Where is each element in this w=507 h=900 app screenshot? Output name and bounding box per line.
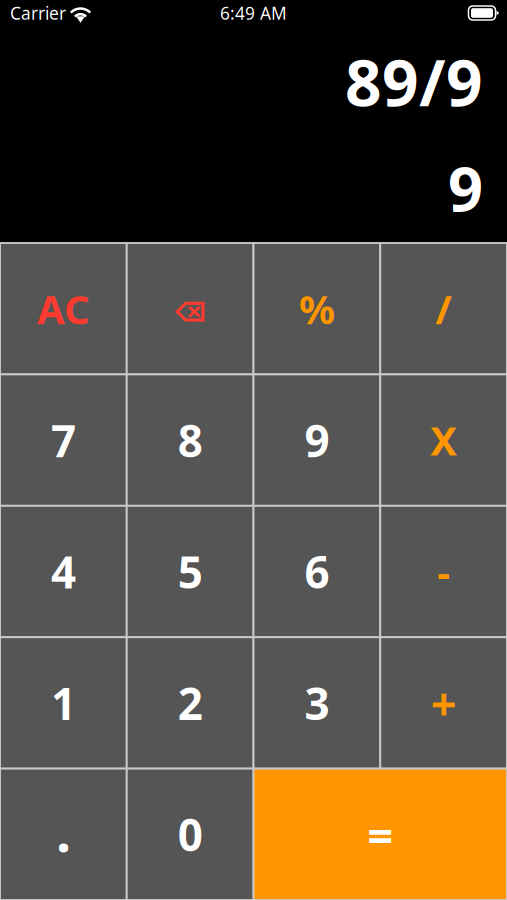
button[interactable]: 0 bbox=[127, 769, 254, 900]
button[interactable]: Multiply bbox=[380, 374, 507, 506]
staticText: 89/9 bbox=[345, 39, 483, 124]
staticText: 0 bbox=[178, 805, 203, 863]
button[interactable]: 4 bbox=[0, 506, 127, 637]
staticText: 6 bbox=[304, 542, 329, 601]
button[interactable]: Decimal point bbox=[0, 769, 127, 900]
button[interactable]: 8 bbox=[127, 374, 254, 506]
staticText: 9 bbox=[304, 411, 329, 469]
staticText: 9 bbox=[448, 147, 483, 228]
button[interactable]: Divide bbox=[380, 243, 507, 374]
button[interactable]: 6 bbox=[253, 506, 380, 637]
button[interactable]: 1 bbox=[0, 637, 127, 769]
button[interactable]: All clear bbox=[0, 243, 127, 374]
button[interactable]: 5 bbox=[127, 506, 254, 637]
staticText: 4 bbox=[51, 542, 76, 601]
staticText: = bbox=[367, 804, 393, 864]
button[interactable]: 7 bbox=[0, 374, 127, 506]
staticText: AC bbox=[37, 282, 90, 335]
button[interactable]: Add bbox=[380, 637, 507, 769]
button[interactable]: Subtract bbox=[380, 506, 507, 637]
button[interactable]: Equals bbox=[253, 769, 507, 900]
button[interactable]: 9 bbox=[253, 374, 380, 506]
staticText: . bbox=[56, 796, 71, 867]
staticText: % bbox=[299, 282, 335, 335]
staticText: 2 bbox=[178, 674, 203, 732]
button[interactable]: Delete bbox=[127, 243, 254, 374]
staticText: Carrier bbox=[10, 1, 66, 24]
staticText: 5 bbox=[178, 542, 203, 601]
staticText: 6:49 AM bbox=[220, 1, 287, 24]
staticText: / bbox=[435, 282, 452, 335]
staticText: 7 bbox=[51, 411, 76, 469]
button[interactable]: 3 bbox=[253, 637, 380, 769]
staticText: + bbox=[431, 673, 457, 733]
staticText: 1 bbox=[51, 674, 76, 732]
staticText: X bbox=[430, 413, 457, 467]
button[interactable]: Percent bbox=[253, 243, 380, 374]
staticText: 8 bbox=[178, 411, 203, 469]
staticText: 3 bbox=[304, 674, 329, 732]
button[interactable]: 2 bbox=[127, 637, 254, 769]
staticText: - bbox=[437, 545, 450, 598]
